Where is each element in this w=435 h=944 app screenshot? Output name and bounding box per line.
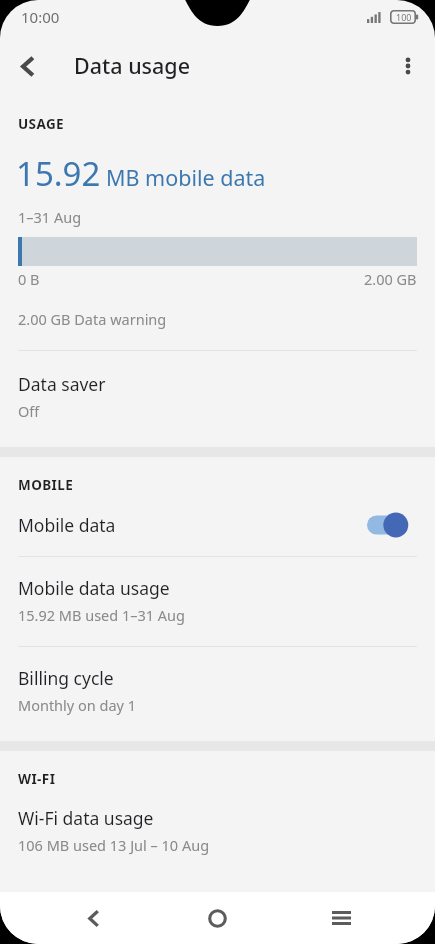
staticText: MB mobile data [106, 163, 266, 192]
staticText: 2.00 GB [364, 269, 417, 289]
staticText: Off [18, 401, 40, 421]
button[interactable]: Billing cycle [0, 647, 435, 741]
button[interactable]: Wi-Fi data usage [0, 788, 435, 875]
staticText: 100 [396, 11, 412, 23]
staticText: Data usage [74, 51, 191, 80]
staticText: 1–31 Aug [18, 207, 82, 227]
button[interactable]: Recent apps [314, 892, 368, 944]
staticText: Billing cycle [18, 666, 114, 690]
staticText: Monthly on day 1 [18, 695, 137, 715]
staticText: Mobile data usage [18, 576, 170, 600]
staticText: 15.92 MB used 1–31 Aug [18, 605, 185, 625]
staticText: 10:00 [21, 7, 60, 27]
staticText: WI-FI [18, 770, 56, 788]
button[interactable]: Mobile data usage [0, 557, 435, 646]
button[interactable]: Data saver [0, 351, 435, 447]
staticText: 2.00 GB Data warning [18, 309, 167, 329]
button[interactable]: Home [190, 892, 244, 944]
staticText: 106 MB used 13 Jul – 10 Aug [18, 835, 210, 855]
button[interactable]: Mobile data [0, 494, 435, 556]
staticText: USAGE [18, 115, 65, 133]
button[interactable]: Back [0, 39, 54, 93]
staticText: 0 B [18, 269, 40, 289]
staticText: MOBILE [18, 476, 74, 494]
staticText: 15.92 [16, 151, 101, 196]
button[interactable]: Back [66, 892, 120, 944]
staticText: Mobile data [18, 513, 116, 537]
staticText: Wi-Fi data usage [18, 806, 154, 830]
button[interactable]: More options [381, 39, 435, 93]
staticText: Data saver [18, 372, 106, 396]
